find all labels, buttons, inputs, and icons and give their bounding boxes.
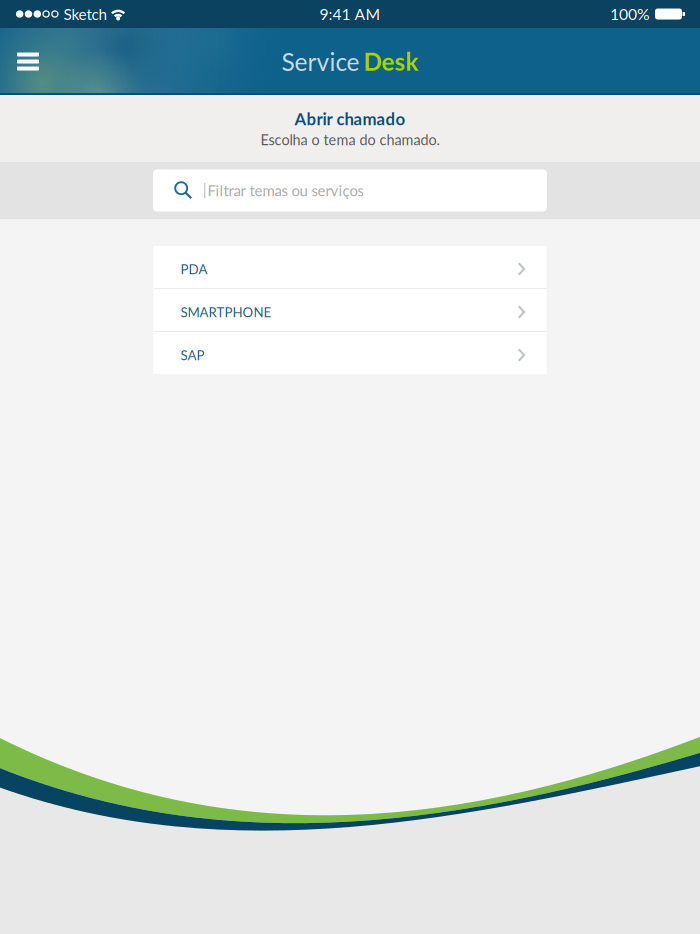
button[interactable]: SAP [153, 332, 546, 374]
button[interactable]: SMARTPHONE [153, 289, 546, 331]
staticText: SAP [180, 347, 204, 363]
staticText: Escolha o tema do chamado. [260, 131, 439, 148]
staticText: Desk [363, 47, 418, 76]
staticText: Sketch [64, 5, 108, 23]
staticText: SMARTPHONE [180, 304, 271, 320]
button[interactable]: Filtrar temas ou serviços [153, 169, 547, 211]
staticText: Abrir chamado [294, 109, 405, 129]
staticText: 100% [610, 5, 650, 23]
staticText: Service [281, 47, 359, 76]
button[interactable]: Menu [0, 36, 56, 86]
staticText: PDA [180, 261, 207, 277]
staticText: Filtrar temas ou serviços [207, 181, 363, 199]
staticText: 9:41 AM [319, 5, 380, 23]
button[interactable]: PDA [153, 246, 546, 288]
